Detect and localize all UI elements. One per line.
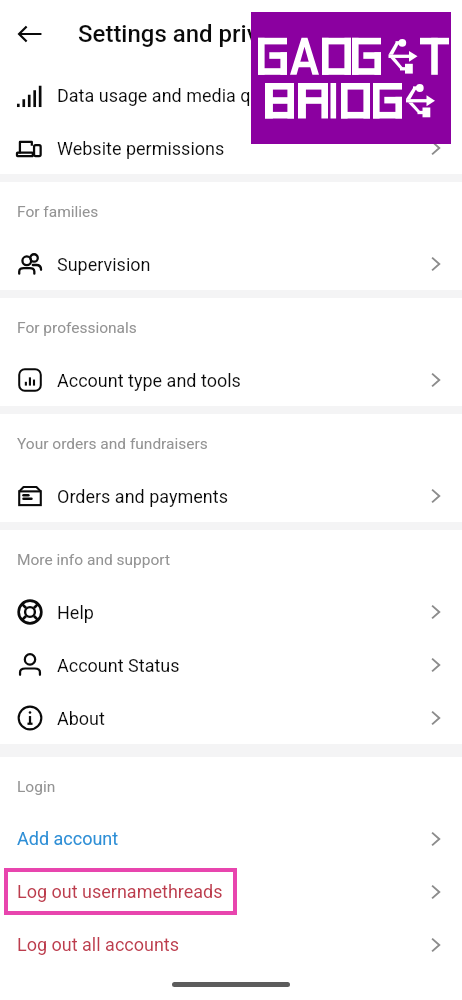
staticText: Account Status — [57, 655, 180, 676]
staticText: Log out all accounts — [17, 934, 180, 955]
button[interactable]: Data usage and media quality — [0, 68, 462, 121]
button[interactable]: Log out usernamethreads — [0, 865, 462, 918]
staticText: For professionals — [17, 319, 137, 337]
button[interactable]: Supervision — [0, 237, 462, 290]
staticText: Supervision — [57, 254, 151, 275]
staticText: More info and support — [17, 551, 171, 569]
button[interactable]: Add account — [0, 812, 462, 865]
button[interactable]: Help — [0, 585, 462, 638]
staticText: Data usage and media quality — [57, 85, 294, 106]
staticText: Website permissions — [57, 138, 225, 159]
staticText: Login — [17, 778, 56, 796]
staticText: Log out usernamethreads — [17, 881, 223, 902]
staticText: Account type and tools — [57, 370, 241, 391]
button[interactable]: About — [0, 691, 462, 744]
staticText: Add account — [17, 828, 119, 849]
button[interactable]: Account Status — [0, 638, 462, 691]
button[interactable]: Account type and tools — [0, 353, 462, 406]
staticText: Settings and privacy — [78, 20, 296, 48]
button[interactable]: Back — [6, 10, 54, 58]
staticText: Orders and payments — [57, 486, 228, 507]
staticText: For families — [17, 203, 99, 221]
staticText: Help — [57, 602, 94, 623]
button[interactable]: Log out all accounts — [0, 918, 462, 971]
staticText: Your orders and fundraisers — [17, 435, 208, 453]
button[interactable]: Orders and payments — [0, 469, 462, 522]
staticText: About — [57, 708, 105, 729]
button[interactable]: Website permissions — [0, 121, 462, 174]
